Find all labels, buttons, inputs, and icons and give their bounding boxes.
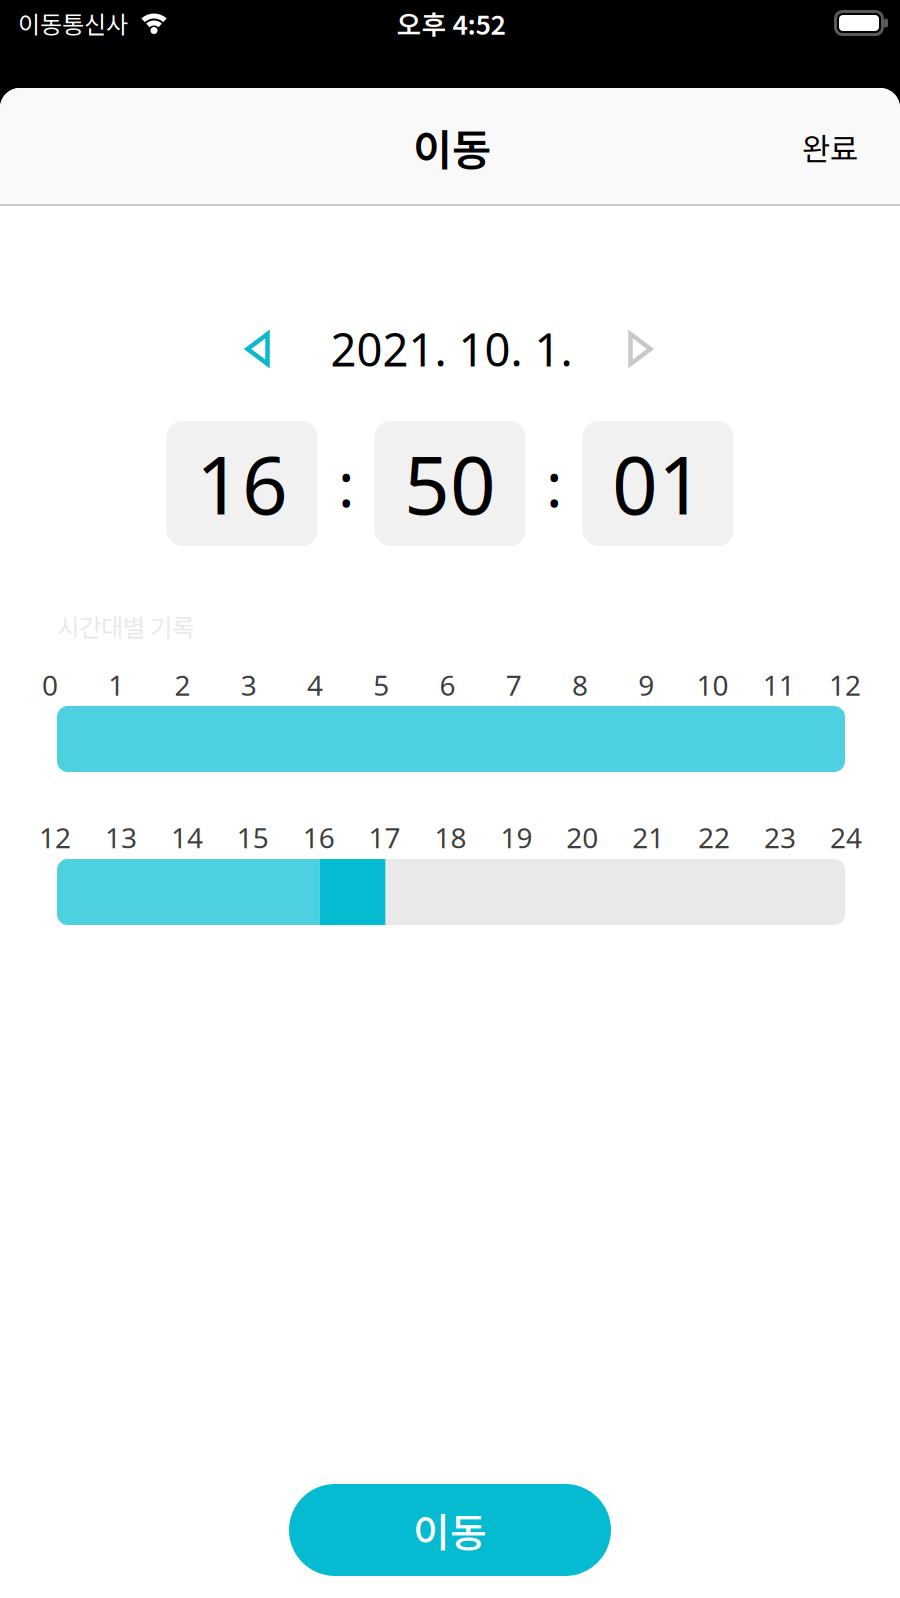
staticText: 4 <box>307 666 323 704</box>
staticText: 0 <box>42 666 58 704</box>
staticText: 이동통신사 <box>18 6 128 40</box>
staticText: 6 <box>439 666 455 704</box>
staticText: 12 <box>39 818 71 856</box>
staticText: 완료 <box>802 125 858 169</box>
staticText: 23 <box>764 818 796 856</box>
staticText: 22 <box>698 818 730 856</box>
staticText: 01 <box>612 429 704 538</box>
staticText: 12 <box>829 666 861 704</box>
staticText: 16 <box>303 818 335 856</box>
staticText: 3 <box>241 666 257 704</box>
staticText: 50 <box>404 429 496 538</box>
button[interactable]: 01 <box>582 421 733 546</box>
staticText: 2021. 10. 1. <box>330 318 572 380</box>
staticText: : <box>338 442 354 525</box>
staticText: : <box>546 442 562 525</box>
staticText: 5 <box>373 666 389 704</box>
staticText: 24 <box>830 818 862 856</box>
button[interactable]: 50 <box>374 421 525 546</box>
staticText: 7 <box>506 666 522 704</box>
staticText: 21 <box>632 818 664 856</box>
staticText: 19 <box>500 818 532 856</box>
staticText: 이동 <box>413 1501 487 1559</box>
staticText: 11 <box>763 666 795 704</box>
staticText: 20 <box>566 818 598 856</box>
staticText: 이동 <box>413 116 491 178</box>
staticText: 8 <box>572 666 588 704</box>
staticText: 2 <box>174 666 190 704</box>
staticText: 오후 4:52 <box>396 4 505 42</box>
staticText: 18 <box>434 818 466 856</box>
staticText: 17 <box>369 818 401 856</box>
button[interactable]: Next day <box>620 324 660 374</box>
staticText: 9 <box>638 666 654 704</box>
button[interactable]: 이동 <box>289 1484 611 1576</box>
staticText: 1 <box>108 666 124 704</box>
staticText: 시간대별 기록 <box>57 608 194 644</box>
button[interactable]: Previous day <box>237 324 277 374</box>
staticText: 13 <box>105 818 137 856</box>
staticText: 14 <box>171 818 203 856</box>
staticText: 15 <box>237 818 269 856</box>
button[interactable]: 완료 <box>790 115 870 179</box>
button[interactable]: 16 <box>166 421 317 546</box>
staticText: 10 <box>696 666 728 704</box>
staticText: 16 <box>196 429 288 538</box>
